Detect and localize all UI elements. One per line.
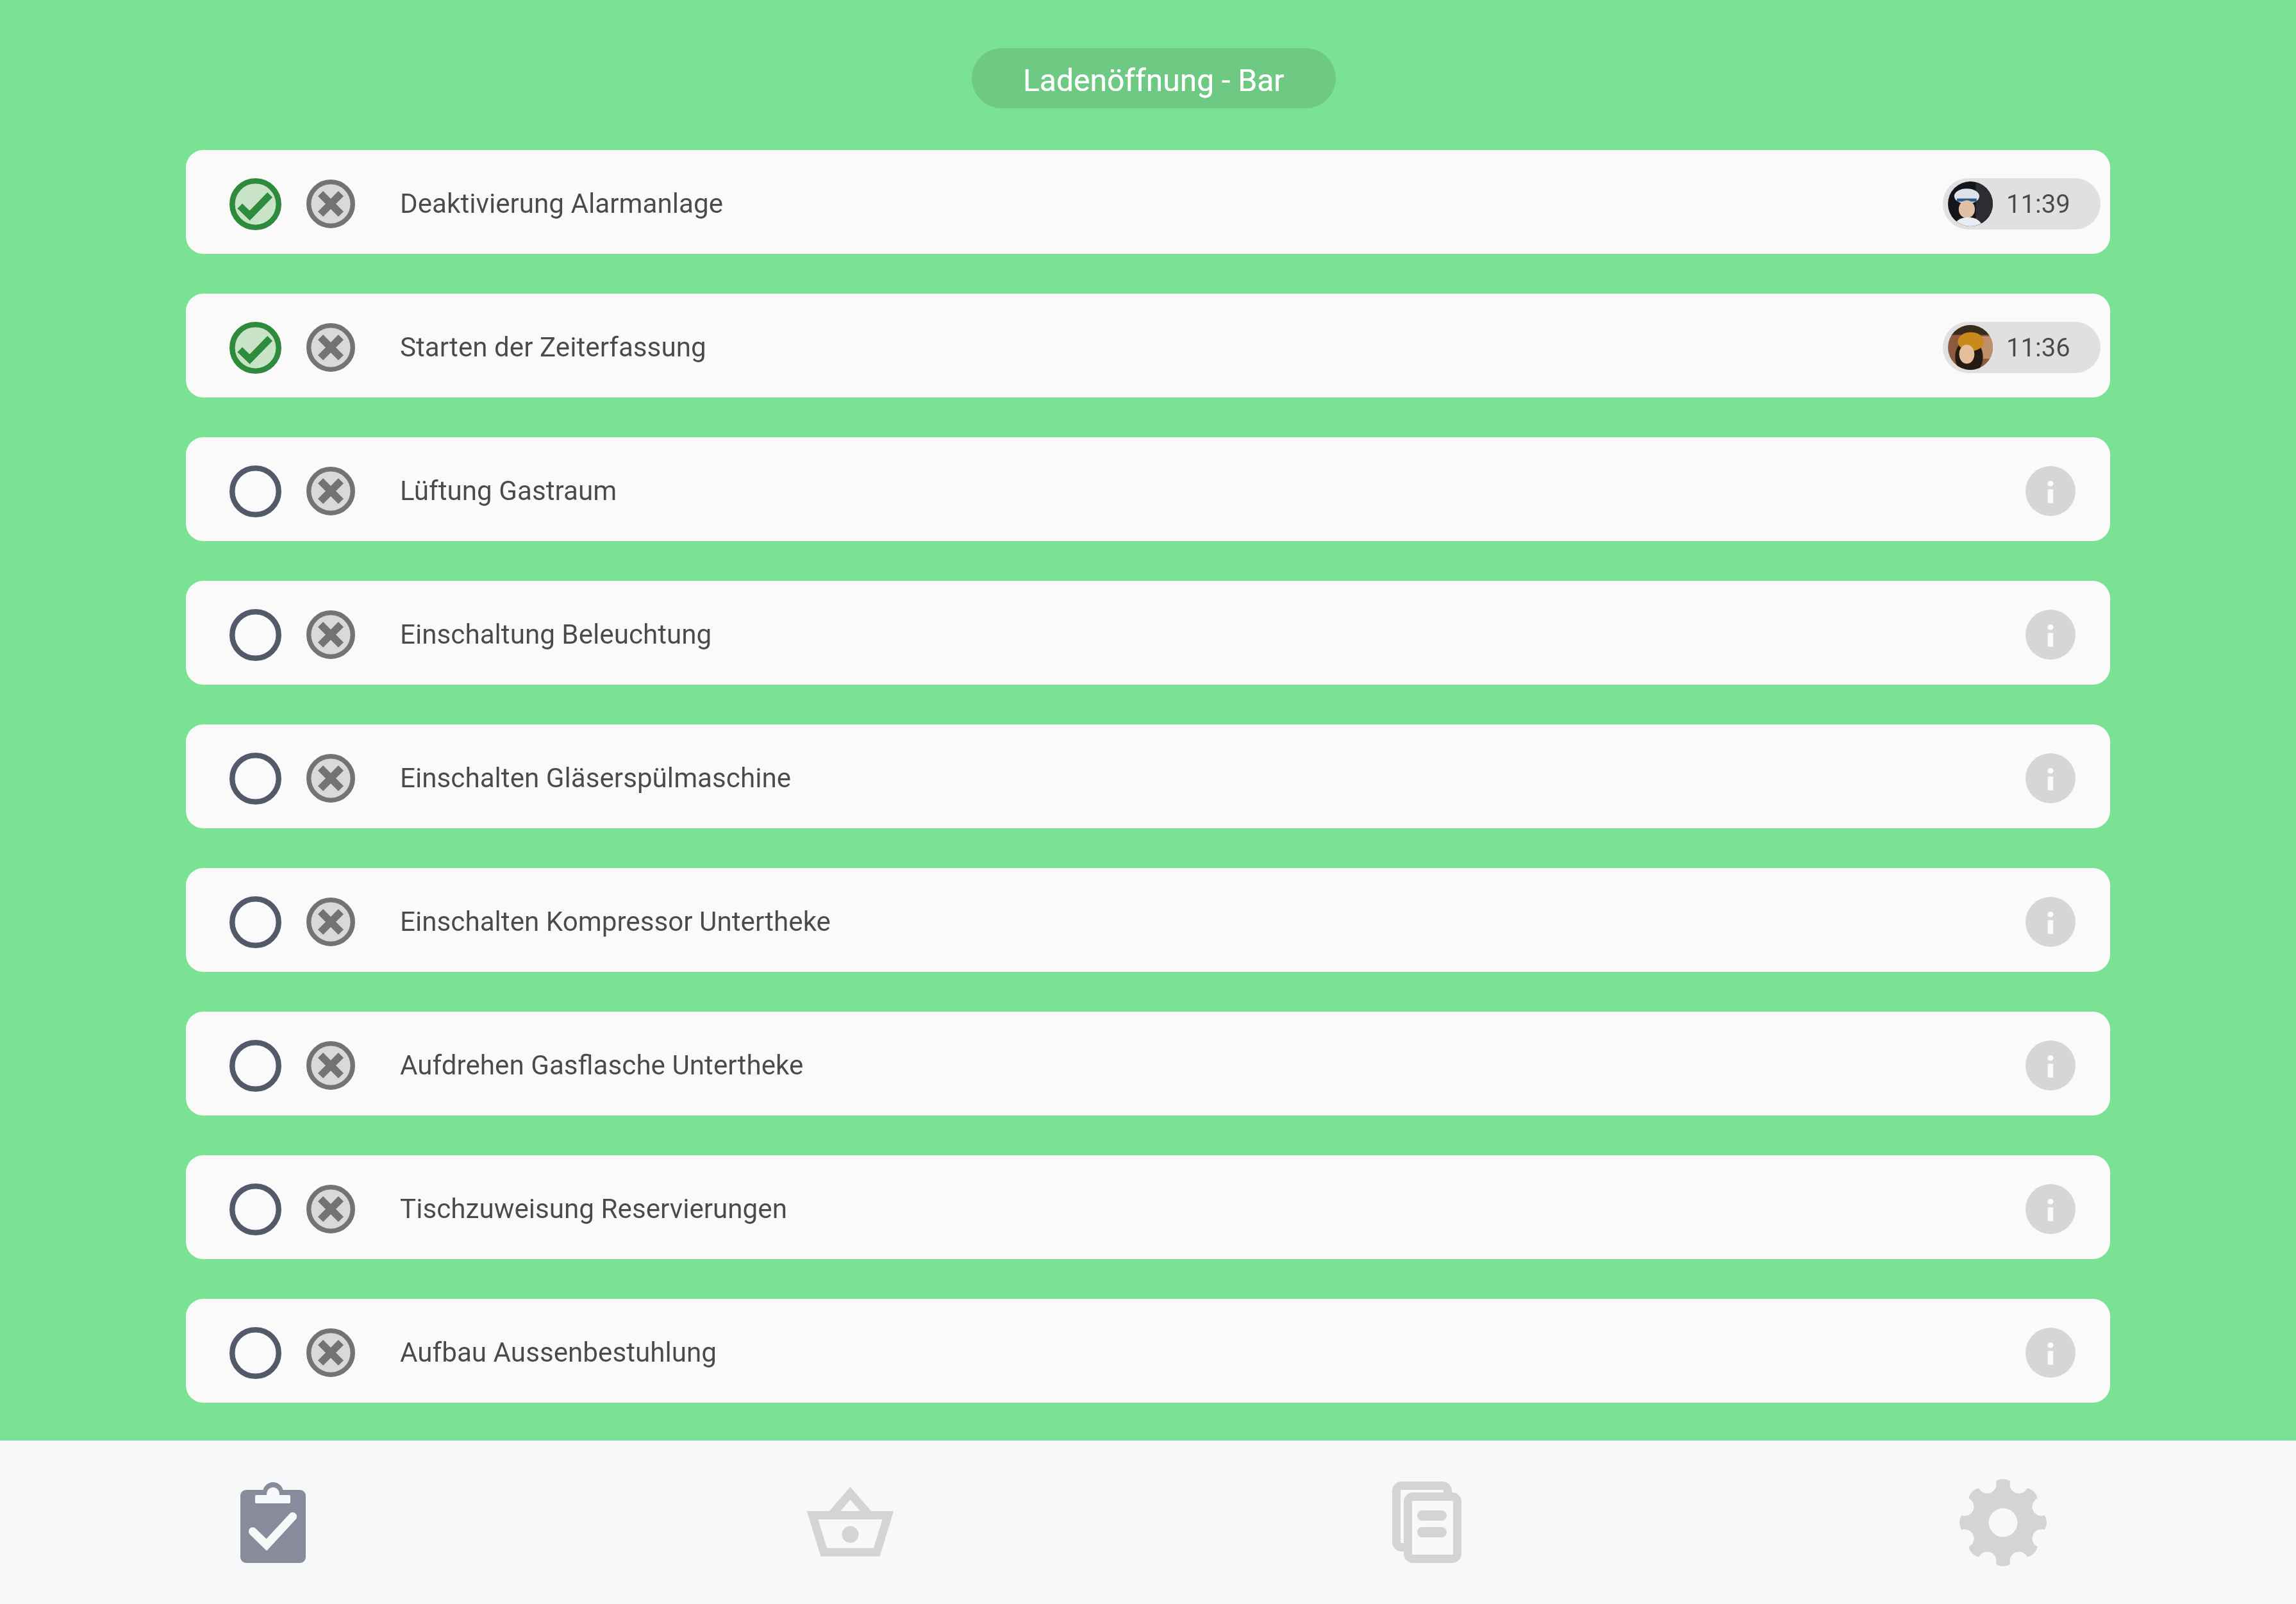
button[interactable]: Nicht anwendbar	[299, 172, 363, 236]
button[interactable]: Als erledigt markieren	[186, 1012, 2110, 1115]
button[interactable]: Nicht anwendbar	[299, 1177, 363, 1241]
staticText: 11:36	[2006, 333, 2070, 363]
button[interactable]: Dokumente	[1138, 1441, 1715, 1604]
button[interactable]: Info	[2018, 890, 2083, 954]
button[interactable]: Bestellungen	[562, 1441, 1138, 1604]
staticText: Aufbau Aussenbestuhlung	[400, 1337, 2018, 1368]
staticText: Einschalten Kompressor Untertheke	[400, 906, 2018, 937]
button[interactable]: Ladenöffnung - Bar	[972, 48, 1336, 108]
button[interactable]: Nicht anwendbar	[299, 1033, 363, 1098]
button[interactable]: Info	[2018, 459, 2083, 523]
staticText: Lüftung Gastraum	[400, 475, 2018, 506]
button[interactable]: Nicht anwendbar	[299, 603, 363, 667]
button[interactable]: Erledigt	[186, 294, 2110, 397]
button[interactable]: Als erledigt markieren	[186, 724, 2110, 828]
button[interactable]: Als erledigt markieren	[186, 868, 2110, 972]
button[interactable]: Info	[2018, 1033, 2083, 1098]
staticText: Tischzuweisung Reservierungen	[400, 1193, 2018, 1224]
button[interactable]: Checklisten	[0, 1441, 562, 1604]
button[interactable]: Als erledigt markieren	[223, 890, 287, 954]
button[interactable]: Als erledigt markieren	[223, 1033, 287, 1098]
button[interactable]: Als erledigt markieren	[186, 581, 2110, 685]
button[interactable]: Nicht anwendbar	[299, 746, 363, 810]
button[interactable]: Als erledigt markieren	[223, 603, 287, 667]
button[interactable]: Nicht anwendbar	[299, 1321, 363, 1385]
button[interactable]: Info	[2018, 603, 2083, 667]
button[interactable]: Nicht anwendbar	[299, 315, 363, 380]
button[interactable]: Erledigt	[223, 315, 287, 380]
button[interactable]: Einstellungen	[1715, 1441, 2292, 1604]
staticText: Einschalten Gläserspülmaschine	[400, 762, 2018, 794]
staticText: Einschaltung Beleuchtung	[400, 619, 2018, 650]
button[interactable]: 11:39	[1943, 178, 2101, 230]
staticText: Aufdrehen Gasflasche Untertheke	[400, 1049, 2018, 1081]
button[interactable]: Erledigt	[223, 172, 287, 236]
button[interactable]: Erledigt	[186, 150, 2110, 254]
button[interactable]: Als erledigt markieren	[223, 746, 287, 810]
button[interactable]: Info	[2018, 746, 2083, 810]
staticText: 11:39	[2006, 189, 2070, 219]
button[interactable]: Als erledigt markieren	[186, 437, 2110, 541]
button[interactable]: Als erledigt markieren	[223, 459, 287, 523]
button[interactable]: Nicht anwendbar	[299, 890, 363, 954]
button[interactable]: Info	[2018, 1321, 2083, 1385]
staticText: Ladenöffnung - Bar	[1023, 62, 1285, 98]
button[interactable]: Als erledigt markieren	[186, 1299, 2110, 1403]
button[interactable]: 11:36	[1943, 322, 2101, 373]
staticText: Starten der Zeiterfassung	[400, 331, 1943, 363]
button[interactable]: Info	[2018, 1177, 2083, 1241]
staticText: Deaktivierung Alarmanlage	[400, 188, 1943, 219]
button[interactable]: Als erledigt markieren	[223, 1177, 287, 1241]
button[interactable]: Nicht anwendbar	[299, 459, 363, 523]
button[interactable]: Als erledigt markieren	[186, 1155, 2110, 1259]
button[interactable]: Als erledigt markieren	[223, 1321, 287, 1385]
